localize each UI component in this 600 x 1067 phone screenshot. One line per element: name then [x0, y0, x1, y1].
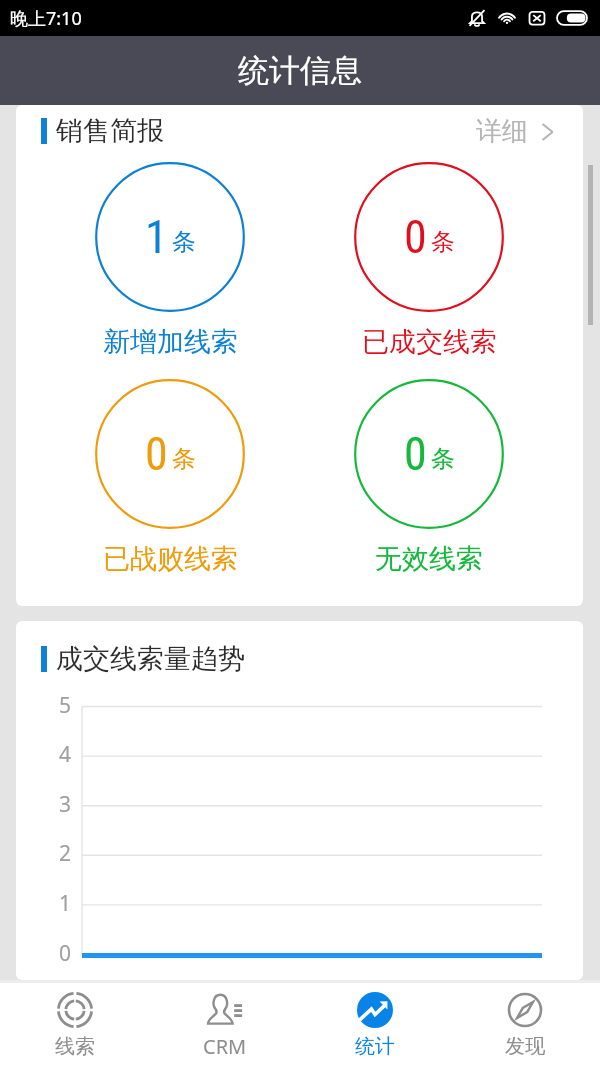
staticText: CRM: [203, 1033, 247, 1060]
staticText: 2: [59, 839, 72, 868]
other: CRM: [207, 991, 243, 1027]
staticText: 3: [59, 790, 72, 819]
staticText: 条: [172, 227, 196, 257]
staticText: 新增加线索: [103, 325, 238, 359]
staticText: 线索: [55, 1034, 95, 1059]
button[interactable]: 发现: [450, 983, 600, 1067]
staticText: 晚上7:10: [10, 6, 82, 31]
button[interactable]: 线索: [0, 983, 150, 1067]
staticText: 0: [145, 427, 168, 481]
staticText: 条: [431, 444, 455, 474]
button[interactable]: 统计: [300, 983, 450, 1067]
staticText: 成交线索量趋势: [56, 642, 245, 676]
staticText: 已成交线索: [362, 325, 497, 359]
staticText: 0: [404, 210, 427, 264]
button[interactable]: CRM: [150, 983, 300, 1067]
staticText: 0: [404, 427, 427, 481]
staticText: 统计: [355, 1034, 395, 1059]
staticText: 0: [59, 939, 72, 968]
staticText: 条: [431, 227, 455, 257]
other: 发现: [507, 992, 543, 1028]
staticText: 销售简报: [56, 114, 164, 148]
staticText: 无效线索: [375, 542, 483, 576]
staticText: 4: [59, 740, 72, 769]
staticText: 统计信息: [238, 51, 362, 90]
staticText: 详细: [476, 115, 528, 148]
staticText: 5: [59, 691, 72, 720]
staticText: 已战败线索: [103, 542, 238, 576]
staticText: 发现: [505, 1034, 545, 1059]
staticText: 1: [145, 210, 168, 264]
staticText: 条: [172, 444, 196, 474]
other: 统计: [357, 992, 393, 1028]
staticText: 1: [59, 889, 72, 918]
button[interactable]: 详细: [476, 115, 555, 148]
other: 线索: [57, 992, 93, 1028]
